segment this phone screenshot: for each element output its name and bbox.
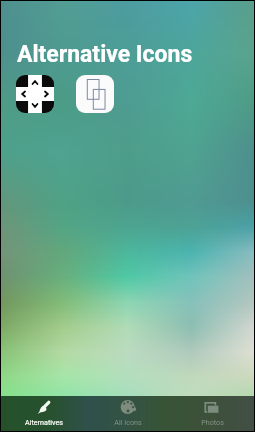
button[interactable]: Directional app icon	[16, 75, 54, 113]
button[interactable]: Alternatives	[1, 396, 86, 431]
staticText: Photos	[201, 418, 224, 426]
staticText: Alternatives	[25, 418, 63, 426]
staticText: All Icons	[114, 418, 142, 426]
staticText: Alternative Icons	[17, 41, 193, 68]
button[interactable]: Photos	[170, 396, 254, 431]
button[interactable]: Rectangles app icon	[76, 75, 114, 113]
button[interactable]: All Icons	[86, 396, 170, 431]
